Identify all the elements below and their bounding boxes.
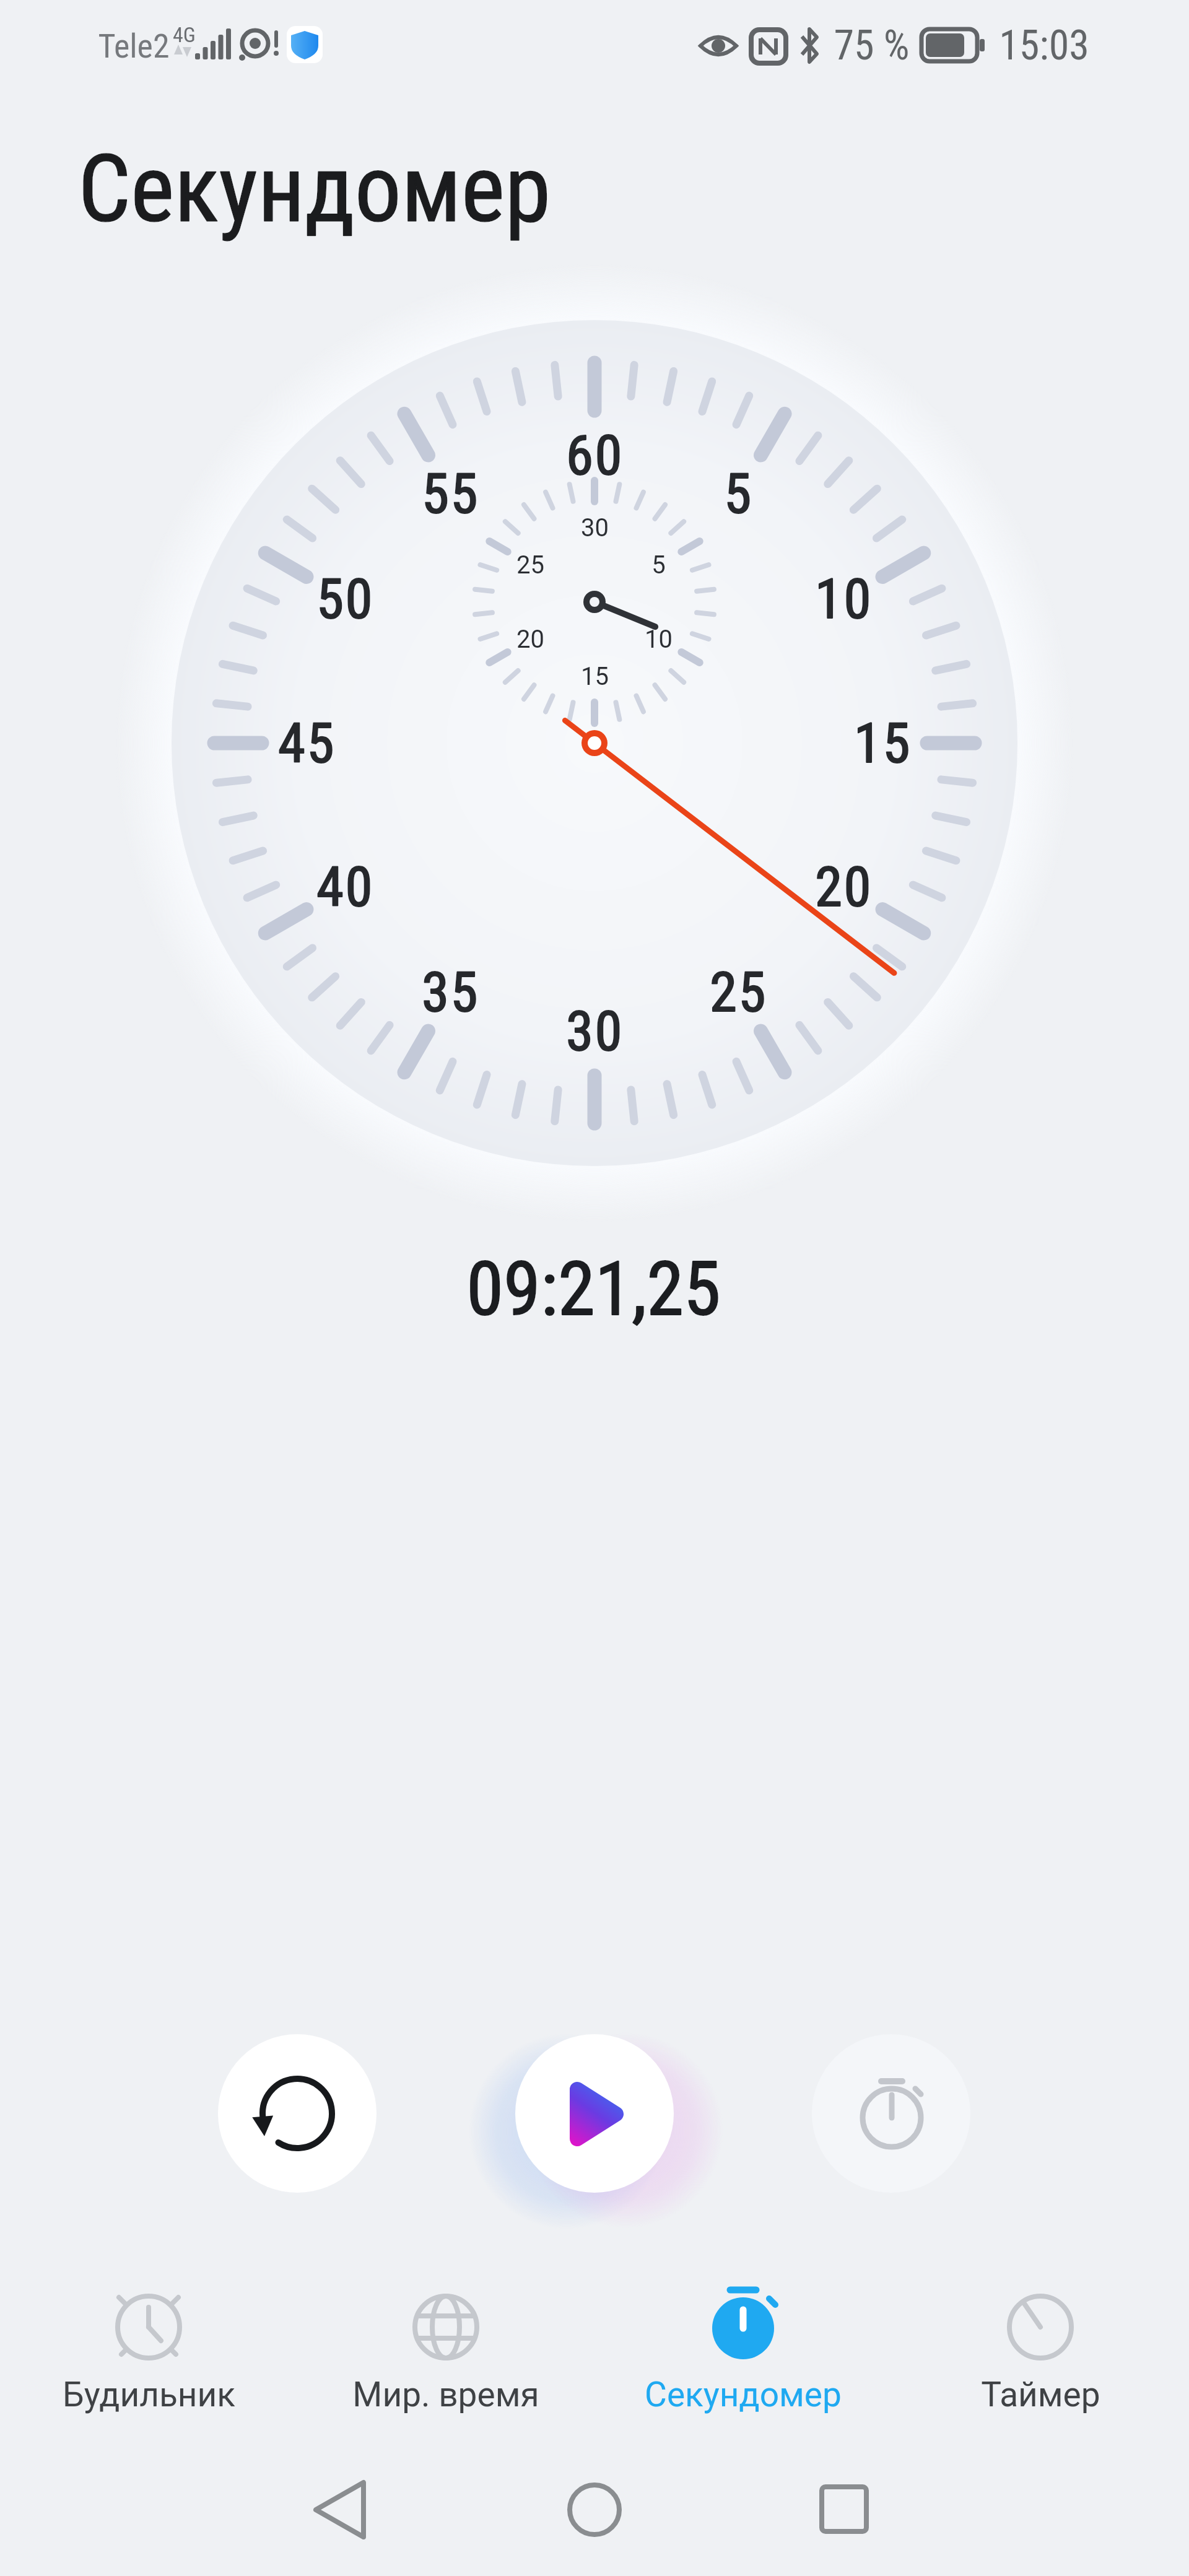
staticText: Tele2: [98, 27, 170, 66]
staticText: 45: [278, 711, 336, 775]
button[interactable]: [966, 2279, 1115, 2421]
staticText: 15: [854, 711, 912, 775]
staticText: 45: [278, 711, 336, 775]
staticText: 55: [422, 461, 479, 526]
staticText: 10: [645, 625, 673, 654]
staticText: 40: [316, 855, 374, 919]
staticText: 09:21,25: [466, 1245, 721, 1333]
staticText: 75 %: [834, 22, 910, 69]
staticText: Секундомер: [78, 135, 551, 244]
button[interactable]: [372, 2279, 520, 2421]
staticText: 35: [422, 960, 479, 1024]
staticText: 15: [854, 711, 912, 775]
button[interactable]: [669, 2279, 817, 2421]
staticText: 25: [710, 960, 767, 1024]
staticText: 20: [815, 855, 873, 919]
staticText: Будильник: [63, 2375, 235, 2414]
staticText: 30: [581, 513, 609, 542]
staticText: 15:03: [999, 22, 1089, 69]
staticText: 40: [316, 855, 374, 919]
staticText: 5: [724, 461, 753, 526]
staticText: 30: [566, 999, 624, 1063]
staticText: 5: [724, 461, 753, 526]
button[interactable]: [297, 2465, 396, 2557]
staticText: 15: [581, 662, 609, 691]
staticText: 25: [516, 550, 544, 580]
staticText: 25: [710, 960, 767, 1024]
staticText: 35: [422, 960, 479, 1024]
staticText: 55: [422, 461, 479, 526]
button[interactable]: [74, 2279, 223, 2421]
staticText: 20: [516, 625, 544, 654]
staticText: 30: [566, 999, 624, 1063]
staticText: Секундомер: [78, 135, 551, 244]
staticText: 5: [651, 550, 666, 580]
staticText: 60: [566, 423, 624, 487]
staticText: Таймер: [981, 2375, 1100, 2414]
staticText: 50: [316, 567, 374, 631]
staticText: 20: [815, 855, 873, 919]
button[interactable]: [795, 2465, 894, 2557]
staticText: 10: [815, 567, 873, 631]
staticText: Секундомер: [645, 2375, 842, 2414]
staticText: 50: [316, 567, 374, 631]
staticText: 09:21,25: [466, 1245, 721, 1333]
staticText: 60: [566, 423, 624, 487]
button[interactable]: [812, 2034, 970, 2193]
button[interactable]: [515, 2034, 674, 2193]
button[interactable]: [545, 2465, 644, 2557]
button[interactable]: [218, 2034, 377, 2193]
staticText: 10: [815, 567, 873, 631]
staticText: 4G: [173, 22, 196, 47]
staticText: Мир. время: [352, 2375, 539, 2414]
